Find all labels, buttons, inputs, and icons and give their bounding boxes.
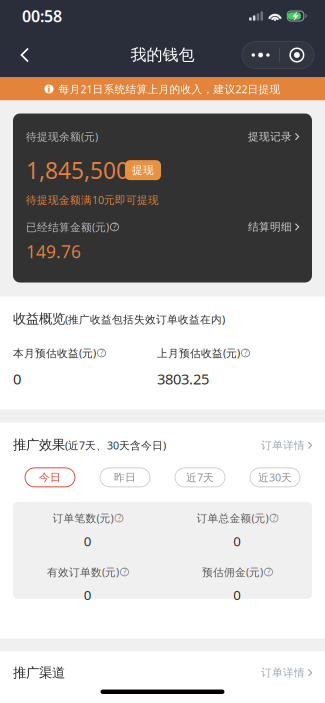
staticText: 推广效果 (13, 436, 65, 453)
staticText: 0 (233, 532, 241, 550)
staticText: ? (100, 348, 103, 358)
staticText: 订单笔数(元) (52, 511, 113, 525)
staticText: 近7天 (186, 470, 214, 484)
staticText: ? (244, 348, 247, 358)
staticText: 今日 (39, 471, 61, 484)
staticText: 00:58 (22, 5, 62, 27)
staticText: ? (117, 513, 120, 523)
staticText: 已经结算金额(元) (26, 220, 109, 234)
button[interactable]: 昨日 (100, 468, 150, 487)
staticText: ? (123, 567, 126, 577)
staticText: 1,845,500 (26, 155, 129, 185)
button[interactable]: 提现 (125, 160, 161, 180)
staticText: ? (272, 513, 275, 523)
button[interactable]: More (242, 41, 279, 68)
button[interactable]: Back (8, 38, 42, 72)
staticText: 3803.25 (157, 369, 209, 388)
button[interactable]: Close (280, 41, 314, 68)
staticText: 0 (84, 586, 92, 604)
staticText: 每月21日系统结算上月的收入，建议22日提现 (58, 82, 280, 96)
button[interactable]: 近7天 (175, 468, 225, 487)
staticText: i (47, 83, 50, 95)
staticText: 待提现金额满10元即可提现 (26, 193, 159, 207)
staticText: 提现 (132, 164, 154, 177)
staticText: 上月预估收益(元) (157, 346, 240, 360)
staticText: 待提现余额(元) (26, 129, 98, 144)
staticText: 结算明细 (248, 220, 292, 233)
staticText: 我的钱包 (130, 45, 194, 65)
staticText: 近30天 (258, 470, 292, 484)
button[interactable]: 订单详情 (261, 439, 312, 452)
staticText: 0 (84, 532, 92, 550)
staticText: 订单总金额(元) (196, 511, 268, 525)
staticText: 0 (233, 586, 241, 604)
button[interactable]: 订单详情 (261, 666, 312, 679)
staticText: (近7天、30天含今日) (65, 438, 166, 452)
staticText: 订单详情 (261, 666, 305, 679)
staticText: 预估佣金(元) (202, 565, 263, 579)
button[interactable]: 提现记录 (248, 130, 299, 143)
staticText: ? (267, 567, 270, 577)
staticText: 149.76 (26, 240, 81, 263)
staticText: ? (113, 222, 116, 232)
staticText: 昨日 (114, 471, 136, 484)
staticText: 提现记录 (248, 130, 292, 143)
staticText: 推广渠道 (13, 664, 65, 681)
staticText: 订单详情 (261, 439, 305, 452)
staticText: 有效订单数(元) (47, 565, 119, 579)
staticText: 收益概览 (13, 310, 65, 327)
button[interactable]: 今日 (25, 468, 75, 487)
button[interactable]: 近30天 (250, 468, 300, 487)
staticText: (推广收益包括失效订单收益在内) (65, 312, 225, 326)
button[interactable]: 结算明细 (248, 220, 299, 233)
staticText: 本月预估收益(元) (13, 346, 96, 360)
staticText: 0 (13, 369, 21, 388)
